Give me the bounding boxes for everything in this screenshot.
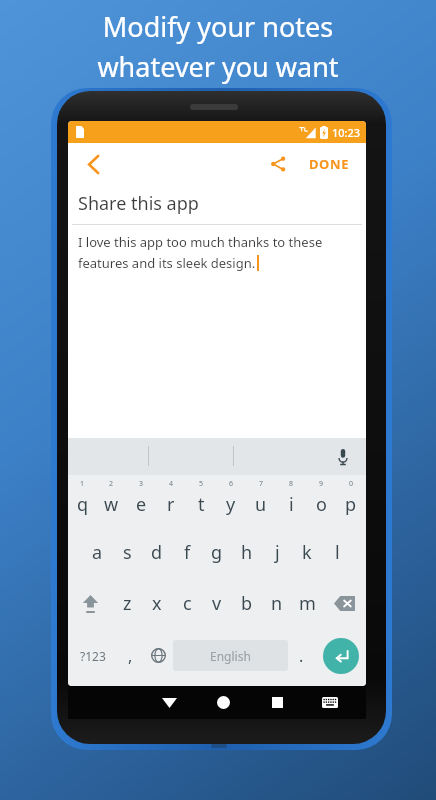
button[interactable]: Shift <box>68 578 112 629</box>
staticText: whatever you want <box>0 48 436 85</box>
button[interactable]: d <box>142 527 172 578</box>
button[interactable]: 9 <box>306 475 336 527</box>
staticText: n <box>271 591 283 616</box>
staticText: 9 <box>319 479 324 489</box>
button[interactable]: , <box>117 629 144 682</box>
staticText: h <box>241 540 253 565</box>
button[interactable]: f <box>172 527 202 578</box>
button[interactable]: 0 <box>336 475 366 527</box>
button[interactable]: 1 <box>68 475 97 527</box>
staticText: English <box>210 648 251 664</box>
button[interactable]: Back <box>142 686 196 719</box>
button[interactable]: 6 <box>216 475 246 527</box>
button[interactable]: Recents <box>250 686 304 719</box>
staticText: ?123 <box>80 648 106 664</box>
button[interactable]: v <box>202 578 232 629</box>
staticText: v <box>212 591 222 616</box>
button[interactable]: Change language <box>144 629 173 682</box>
staticText: x <box>152 591 162 616</box>
staticText: a <box>92 540 103 565</box>
staticText: f <box>184 540 191 565</box>
button[interactable]: 5 <box>186 475 216 527</box>
staticText: 8 <box>289 479 294 489</box>
staticText: p <box>345 492 357 517</box>
button[interactable]: Switch keyboard <box>304 686 355 719</box>
button[interactable]: n <box>262 578 292 629</box>
staticText: 7 <box>259 479 264 489</box>
staticText: t <box>198 492 205 517</box>
staticText: Modify your notes <box>0 8 436 45</box>
button[interactable]: 2 <box>97 475 126 527</box>
staticText: b <box>241 591 253 616</box>
staticText: 6 <box>229 479 234 489</box>
button[interactable]: 8 <box>276 475 306 527</box>
button[interactable]: Share <box>259 145 297 183</box>
staticText: j <box>275 540 280 565</box>
button[interactable]: s <box>112 527 142 578</box>
staticText: I love this app too much thanks to these <box>78 233 323 251</box>
button[interactable]: 7 <box>246 475 276 527</box>
staticText: d <box>151 540 163 565</box>
staticText: DONE <box>309 155 350 173</box>
staticText: s <box>123 540 132 565</box>
button[interactable]: Enter <box>323 638 359 674</box>
button[interactable]: z <box>112 578 142 629</box>
staticText: o <box>316 492 327 517</box>
staticText: g <box>211 540 223 565</box>
button[interactable]: b <box>232 578 262 629</box>
button[interactable]: ?123 <box>68 629 117 682</box>
staticText: z <box>123 591 132 616</box>
button[interactable]: c <box>172 578 202 629</box>
button[interactable]: x <box>142 578 172 629</box>
button[interactable]: DONE <box>297 147 362 181</box>
button[interactable]: l <box>322 527 352 578</box>
button[interactable]: j <box>262 527 292 578</box>
button[interactable]: Home <box>196 686 250 719</box>
staticText: y <box>226 492 236 517</box>
staticText: 1 <box>80 479 85 489</box>
staticText: 2 <box>109 479 114 489</box>
button[interactable]: . <box>288 629 315 682</box>
staticText: , <box>128 645 133 667</box>
button[interactable]: English <box>173 640 288 671</box>
button[interactable]: k <box>292 527 322 578</box>
staticText: c <box>183 591 192 616</box>
button[interactable]: 3 <box>126 475 156 527</box>
staticText: 0 <box>349 479 354 489</box>
staticText: q <box>77 492 89 517</box>
button[interactable]: Back <box>76 147 110 181</box>
button[interactable]: m <box>292 578 322 629</box>
staticText: 5 <box>199 479 204 489</box>
staticText: r <box>167 492 175 517</box>
staticText: Share this app <box>78 191 199 216</box>
button[interactable]: 4 <box>156 475 186 527</box>
staticText: w <box>104 492 119 517</box>
staticText: l <box>335 540 340 565</box>
staticText: features and its sleek design. <box>78 254 256 272</box>
staticText: 10:23 <box>332 125 361 140</box>
button[interactable]: h <box>232 527 262 578</box>
staticText: 4 <box>169 479 174 489</box>
staticText: i <box>289 492 294 517</box>
staticText: u <box>255 492 267 517</box>
staticText: . <box>299 645 304 667</box>
button[interactable]: Voice input <box>330 444 356 470</box>
staticText: k <box>302 540 312 565</box>
staticText: m <box>299 591 316 616</box>
staticText: 3 <box>139 479 144 489</box>
staticText: e <box>136 492 147 517</box>
button[interactable]: a <box>82 527 112 578</box>
button[interactable]: g <box>202 527 232 578</box>
button[interactable]: Backspace <box>322 578 366 629</box>
